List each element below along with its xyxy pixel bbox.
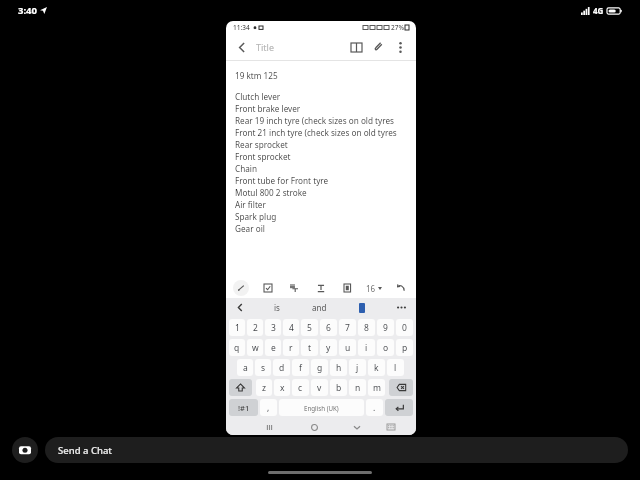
- button[interactable]: k: [368, 359, 385, 376]
- staticText: 19 ktm 125: [235, 70, 278, 81]
- staticText: e: [271, 342, 276, 354]
- button[interactable]: More: [395, 301, 408, 314]
- button[interactable]: Reading view: [347, 38, 365, 56]
- button[interactable]: i: [358, 339, 375, 356]
- button[interactable]: z: [256, 379, 272, 396]
- button[interactable]: 2: [247, 319, 263, 336]
- button[interactable]: c: [292, 379, 309, 396]
- staticText: o: [383, 342, 389, 354]
- staticText: Front sprocket: [235, 151, 291, 162]
- button[interactable]: 6: [320, 319, 337, 336]
- staticText: Air filter: [235, 199, 266, 210]
- button[interactable]: 7: [339, 319, 356, 336]
- button[interactable]: b: [330, 379, 347, 396]
- button[interactable]: !#1: [229, 399, 258, 416]
- button[interactable]: u: [339, 339, 356, 356]
- staticText: 0: [402, 322, 407, 334]
- button[interactable]: d: [273, 359, 290, 376]
- button[interactable]: 9: [377, 319, 394, 336]
- button[interactable]: r: [283, 339, 299, 356]
- button[interactable]: g: [311, 359, 328, 376]
- button[interactable]: a: [237, 359, 253, 376]
- staticText: f: [299, 362, 302, 374]
- staticText: Chain: [235, 163, 257, 174]
- staticText: b: [336, 382, 342, 394]
- button[interactable]: .: [366, 399, 383, 416]
- button[interactable]: Checklist: [260, 280, 276, 296]
- button[interactable]: h: [330, 359, 347, 376]
- button[interactable]: English (UK): [279, 399, 364, 416]
- staticText: 4: [289, 322, 294, 334]
- button[interactable]: 0: [396, 319, 413, 336]
- button[interactable]: Undo: [393, 280, 409, 296]
- button[interactable]: n: [349, 379, 366, 396]
- button[interactable]: e: [265, 339, 281, 356]
- staticText: g: [317, 362, 323, 374]
- button[interactable]: v: [311, 379, 328, 396]
- button[interactable]: 5: [301, 319, 318, 336]
- button[interactable]: Clipboard: [359, 303, 365, 313]
- button[interactable]: l: [387, 359, 404, 376]
- button[interactable]: is: [274, 302, 280, 313]
- button[interactable]: p: [396, 339, 413, 356]
- staticText: c: [298, 382, 303, 394]
- staticText: 1: [235, 322, 240, 334]
- staticText: v: [317, 382, 322, 394]
- staticText: d: [279, 362, 285, 374]
- button[interactable]: x: [274, 379, 290, 396]
- staticText: u: [345, 342, 351, 354]
- button[interactable]: Attach: [370, 38, 388, 56]
- button[interactable]: Previous: [234, 301, 247, 314]
- button[interactable]: 8: [358, 319, 375, 336]
- button[interactable]: Text format: [313, 280, 329, 296]
- button[interactable]: Paragraph style: [286, 280, 302, 296]
- staticText: Clutch lever: [235, 91, 281, 102]
- button[interactable]: j: [349, 359, 366, 376]
- button[interactable]: o: [377, 339, 394, 356]
- button[interactable]: Back: [234, 39, 250, 55]
- staticText: Front 21 inch tyre (check sizes on old t…: [235, 127, 397, 138]
- button[interactable]: Shift: [229, 379, 252, 396]
- button[interactable]: ,: [260, 399, 277, 416]
- staticText: k: [374, 362, 379, 374]
- button[interactable]: 4: [283, 319, 299, 336]
- button[interactable]: Highlight: [340, 280, 356, 296]
- button[interactable]: s: [255, 359, 271, 376]
- staticText: w: [252, 342, 259, 354]
- staticText: i: [365, 342, 368, 354]
- staticText: Front brake lever: [235, 103, 301, 114]
- button[interactable]: Hide keyboard: [350, 420, 364, 434]
- button[interactable]: Home: [307, 420, 321, 434]
- button[interactable]: 1: [229, 319, 245, 336]
- button[interactable]: and: [312, 302, 327, 313]
- staticText: 5: [307, 322, 312, 334]
- button[interactable]: Font size 16: [366, 283, 382, 294]
- button[interactable]: Enter: [385, 399, 413, 416]
- staticText: Front tube for Front tyre: [235, 175, 329, 186]
- staticText: r: [289, 342, 293, 354]
- staticText: 3: [271, 322, 276, 334]
- staticText: English (UK): [304, 404, 339, 412]
- button[interactable]: q: [229, 339, 245, 356]
- button[interactable]: More options: [392, 39, 408, 55]
- staticText: h: [336, 362, 342, 374]
- button[interactable]: Recents: [262, 420, 276, 434]
- button[interactable]: w: [247, 339, 263, 356]
- staticText: .: [373, 402, 376, 414]
- staticText: 8: [364, 322, 369, 334]
- button[interactable]: Camera: [12, 437, 38, 463]
- button[interactable]: y: [320, 339, 337, 356]
- button[interactable]: t: [301, 339, 318, 356]
- staticText: m: [373, 382, 381, 394]
- button[interactable]: 3: [265, 319, 281, 336]
- staticText: 16: [366, 283, 376, 294]
- button[interactable]: Draw: [233, 280, 249, 296]
- button[interactable]: Keyboard layout: [384, 420, 398, 434]
- button[interactable]: f: [292, 359, 309, 376]
- button[interactable]: Send a Chat: [58, 437, 628, 463]
- button[interactable]: m: [368, 379, 385, 396]
- staticText: !#1: [238, 403, 250, 413]
- button[interactable]: Backspace: [389, 379, 413, 396]
- staticText: 11:34: [233, 23, 250, 32]
- staticText: x: [280, 382, 285, 394]
